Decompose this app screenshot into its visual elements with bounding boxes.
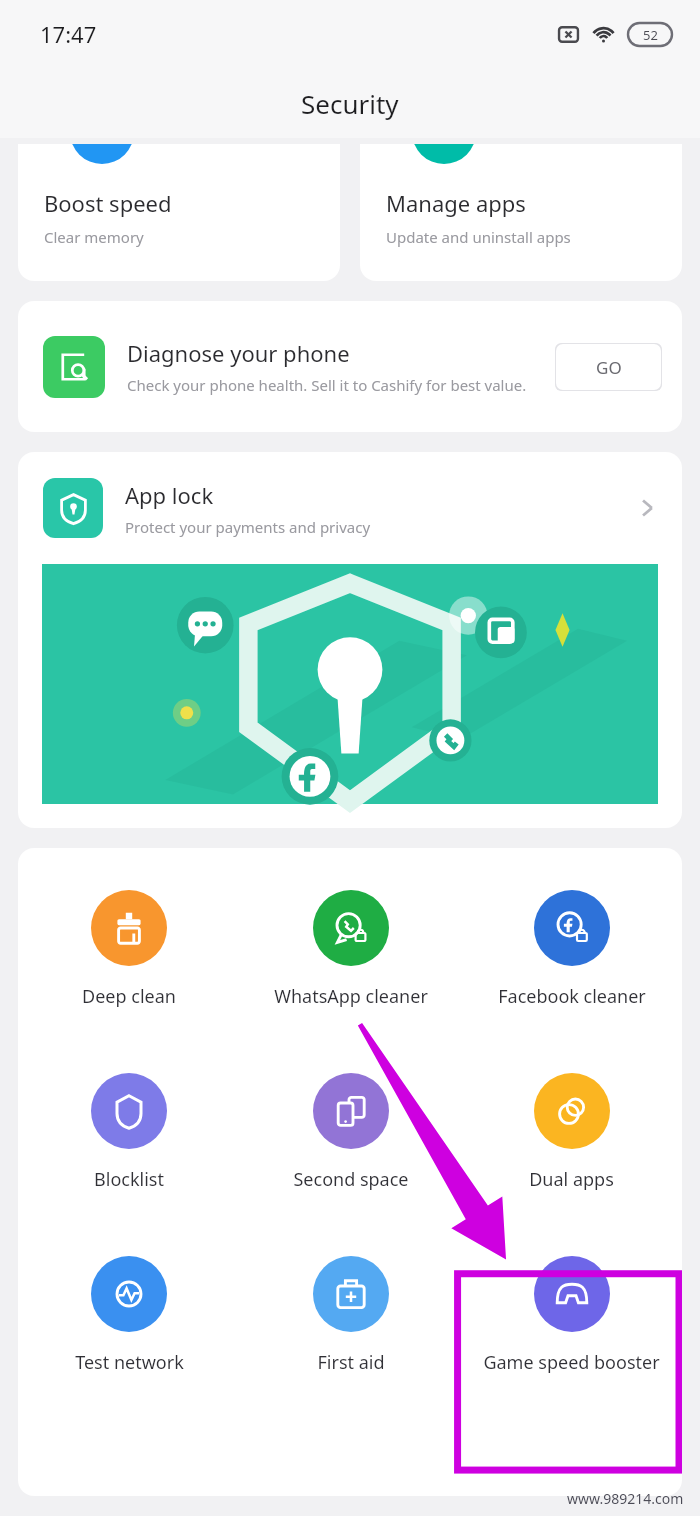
button[interactable]: Facebook cleaner	[461, 890, 682, 1009]
staticText: Clear memory	[44, 227, 144, 247]
button[interactable]: App lock	[18, 452, 682, 564]
staticText: GO	[596, 356, 622, 379]
button[interactable]: WhatsApp cleaner	[240, 890, 461, 1009]
button[interactable]: Test network	[18, 1256, 240, 1375]
button[interactable]: Second space	[240, 1073, 461, 1192]
staticText: Update and uninstall apps	[386, 227, 571, 247]
staticText: 17:47	[40, 19, 97, 49]
staticText: Security	[301, 86, 399, 121]
staticText: Game speed booster	[483, 1350, 660, 1375]
staticText: Protect your payments and privacy	[125, 517, 371, 537]
button[interactable]: GO	[555, 343, 662, 391]
staticText: Blocklist	[94, 1167, 164, 1192]
staticText: Manage apps	[386, 188, 526, 218]
button[interactable]: Game speed booster	[461, 1256, 682, 1375]
staticText: WhatsApp cleaner	[274, 984, 428, 1009]
staticText: Boost speed	[44, 188, 172, 218]
staticText: Facebook cleaner	[498, 984, 646, 1009]
staticText: Second space	[293, 1167, 409, 1192]
staticText: Test network	[75, 1350, 184, 1375]
staticText: Check your phone health. Sell it to Cash…	[127, 375, 527, 395]
staticText: App lock	[125, 480, 214, 510]
button[interactable]	[42, 564, 658, 804]
staticText: First aid	[317, 1350, 385, 1375]
staticText: www.989214.com	[567, 1489, 684, 1508]
button[interactable]: Manage apps	[360, 144, 682, 281]
button[interactable]: Boost speed	[18, 144, 340, 281]
button[interactable]: Diagnose your phone	[18, 301, 682, 432]
button[interactable]: Blocklist	[18, 1073, 240, 1192]
staticText: 52	[643, 26, 658, 44]
button[interactable]: Dual apps	[461, 1073, 682, 1192]
other: Open App lock	[636, 497, 658, 519]
button[interactable]: First aid	[240, 1256, 461, 1375]
staticText: Dual apps	[529, 1167, 614, 1192]
button[interactable]: Deep clean	[18, 890, 240, 1009]
staticText: Deep clean	[82, 984, 176, 1009]
staticText: Diagnose your phone	[127, 338, 350, 368]
